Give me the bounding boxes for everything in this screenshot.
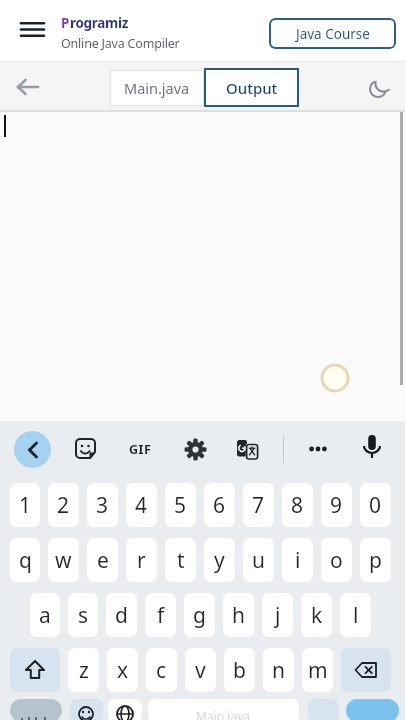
staticText: 6 xyxy=(213,491,226,520)
button[interactable]: g xyxy=(184,593,215,637)
button[interactable]: j xyxy=(262,593,293,637)
button[interactable]: m xyxy=(302,648,333,692)
button[interactable] xyxy=(308,699,339,720)
staticText: c xyxy=(156,656,167,685)
button[interactable]: GIF xyxy=(122,435,158,463)
button[interactable]: a xyxy=(30,593,60,637)
staticText: k xyxy=(311,601,323,630)
staticText: Java Course xyxy=(296,25,370,43)
button[interactable]: 3 xyxy=(87,483,118,527)
button[interactable]: Main.java xyxy=(148,699,299,720)
staticText: Output xyxy=(226,78,278,98)
staticText: 3 xyxy=(96,491,109,520)
staticText: o xyxy=(330,546,343,575)
button[interactable]: t xyxy=(165,538,196,582)
staticText: n xyxy=(272,656,285,685)
staticText: i xyxy=(295,546,301,575)
staticText: y xyxy=(214,546,225,575)
button[interactable] xyxy=(346,699,399,720)
staticText: q xyxy=(19,546,32,575)
staticText: P xyxy=(61,14,70,32)
button[interactable]: e xyxy=(87,538,118,582)
button[interactable]: 8 xyxy=(282,483,313,527)
staticText: Main.java xyxy=(124,78,190,98)
button[interactable] xyxy=(14,431,51,468)
button[interactable] xyxy=(231,433,265,467)
staticText: r xyxy=(137,546,146,575)
staticText: d xyxy=(115,601,128,630)
button[interactable]: r xyxy=(126,538,157,582)
staticText: 9 xyxy=(330,491,343,520)
staticText: v xyxy=(195,656,206,685)
staticText: 0 xyxy=(369,491,382,520)
staticText: g xyxy=(193,601,206,630)
button[interactable]: Output xyxy=(204,68,299,107)
button[interactable]: v xyxy=(185,648,216,692)
staticText: 1 xyxy=(19,491,32,520)
button[interactable]: 6 xyxy=(204,483,235,527)
staticText: f xyxy=(157,601,165,630)
staticText: u xyxy=(252,546,265,575)
button[interactable]: h xyxy=(223,593,254,637)
button[interactable]: n xyxy=(263,648,294,692)
button[interactable]: 1 xyxy=(10,483,40,527)
button[interactable]: y xyxy=(204,538,235,582)
staticText: l xyxy=(353,601,359,630)
button[interactable]: Main.java xyxy=(110,70,204,106)
button[interactable] xyxy=(360,70,396,106)
button[interactable]: w xyxy=(48,538,79,582)
staticText: m xyxy=(308,656,328,685)
button[interactable] xyxy=(10,648,60,692)
button[interactable]: z xyxy=(68,648,99,692)
staticText: a xyxy=(39,601,51,630)
button[interactable]: q xyxy=(10,538,40,582)
button[interactable]: 5 xyxy=(165,483,196,527)
staticText: 8 xyxy=(291,491,304,520)
button[interactable]: 0 xyxy=(360,483,391,527)
button[interactable]: f xyxy=(145,593,176,637)
staticText: p xyxy=(369,546,382,575)
button[interactable]: x xyxy=(107,648,138,692)
staticText: 5 xyxy=(174,491,187,520)
button[interactable]: o xyxy=(321,538,352,582)
staticText: GIF xyxy=(129,441,152,458)
button[interactable] xyxy=(108,699,142,720)
staticText: x xyxy=(117,656,129,685)
button[interactable] xyxy=(10,699,62,720)
button[interactable]: Java Course xyxy=(269,18,396,49)
staticText: Online Java Compiler xyxy=(61,35,180,52)
button[interactable] xyxy=(8,69,46,105)
staticText: 4 xyxy=(135,491,148,520)
button[interactable]: b xyxy=(224,648,255,692)
button[interactable] xyxy=(179,433,211,465)
button[interactable] xyxy=(70,699,103,720)
button[interactable]: i xyxy=(282,538,313,582)
button[interactable] xyxy=(341,648,391,692)
staticText: z xyxy=(79,656,89,685)
button[interactable]: l xyxy=(340,593,371,637)
button[interactable]: 2 xyxy=(48,483,79,527)
staticText: w xyxy=(55,546,72,575)
button[interactable] xyxy=(14,14,50,44)
button[interactable]: u xyxy=(243,538,274,582)
staticText: e xyxy=(97,546,109,575)
button[interactable]: 4 xyxy=(126,483,157,527)
staticText: s xyxy=(78,601,89,630)
button[interactable] xyxy=(302,435,334,463)
button[interactable]: d xyxy=(106,593,137,637)
button[interactable] xyxy=(70,433,102,465)
staticText: 7 xyxy=(252,491,265,520)
button[interactable]: 9 xyxy=(321,483,352,527)
staticText: 2 xyxy=(57,491,70,520)
button[interactable]: k xyxy=(301,593,332,637)
staticText: Main.java xyxy=(196,708,251,720)
button[interactable] xyxy=(356,432,388,464)
button[interactable]: 7 xyxy=(243,483,274,527)
staticText: t xyxy=(177,546,185,575)
button[interactable]: p xyxy=(360,538,391,582)
staticText: b xyxy=(233,656,246,685)
button[interactable]: c xyxy=(146,648,177,692)
button[interactable]: s xyxy=(68,593,98,637)
staticText: rogramiz xyxy=(70,14,129,32)
staticText: h xyxy=(232,601,245,630)
